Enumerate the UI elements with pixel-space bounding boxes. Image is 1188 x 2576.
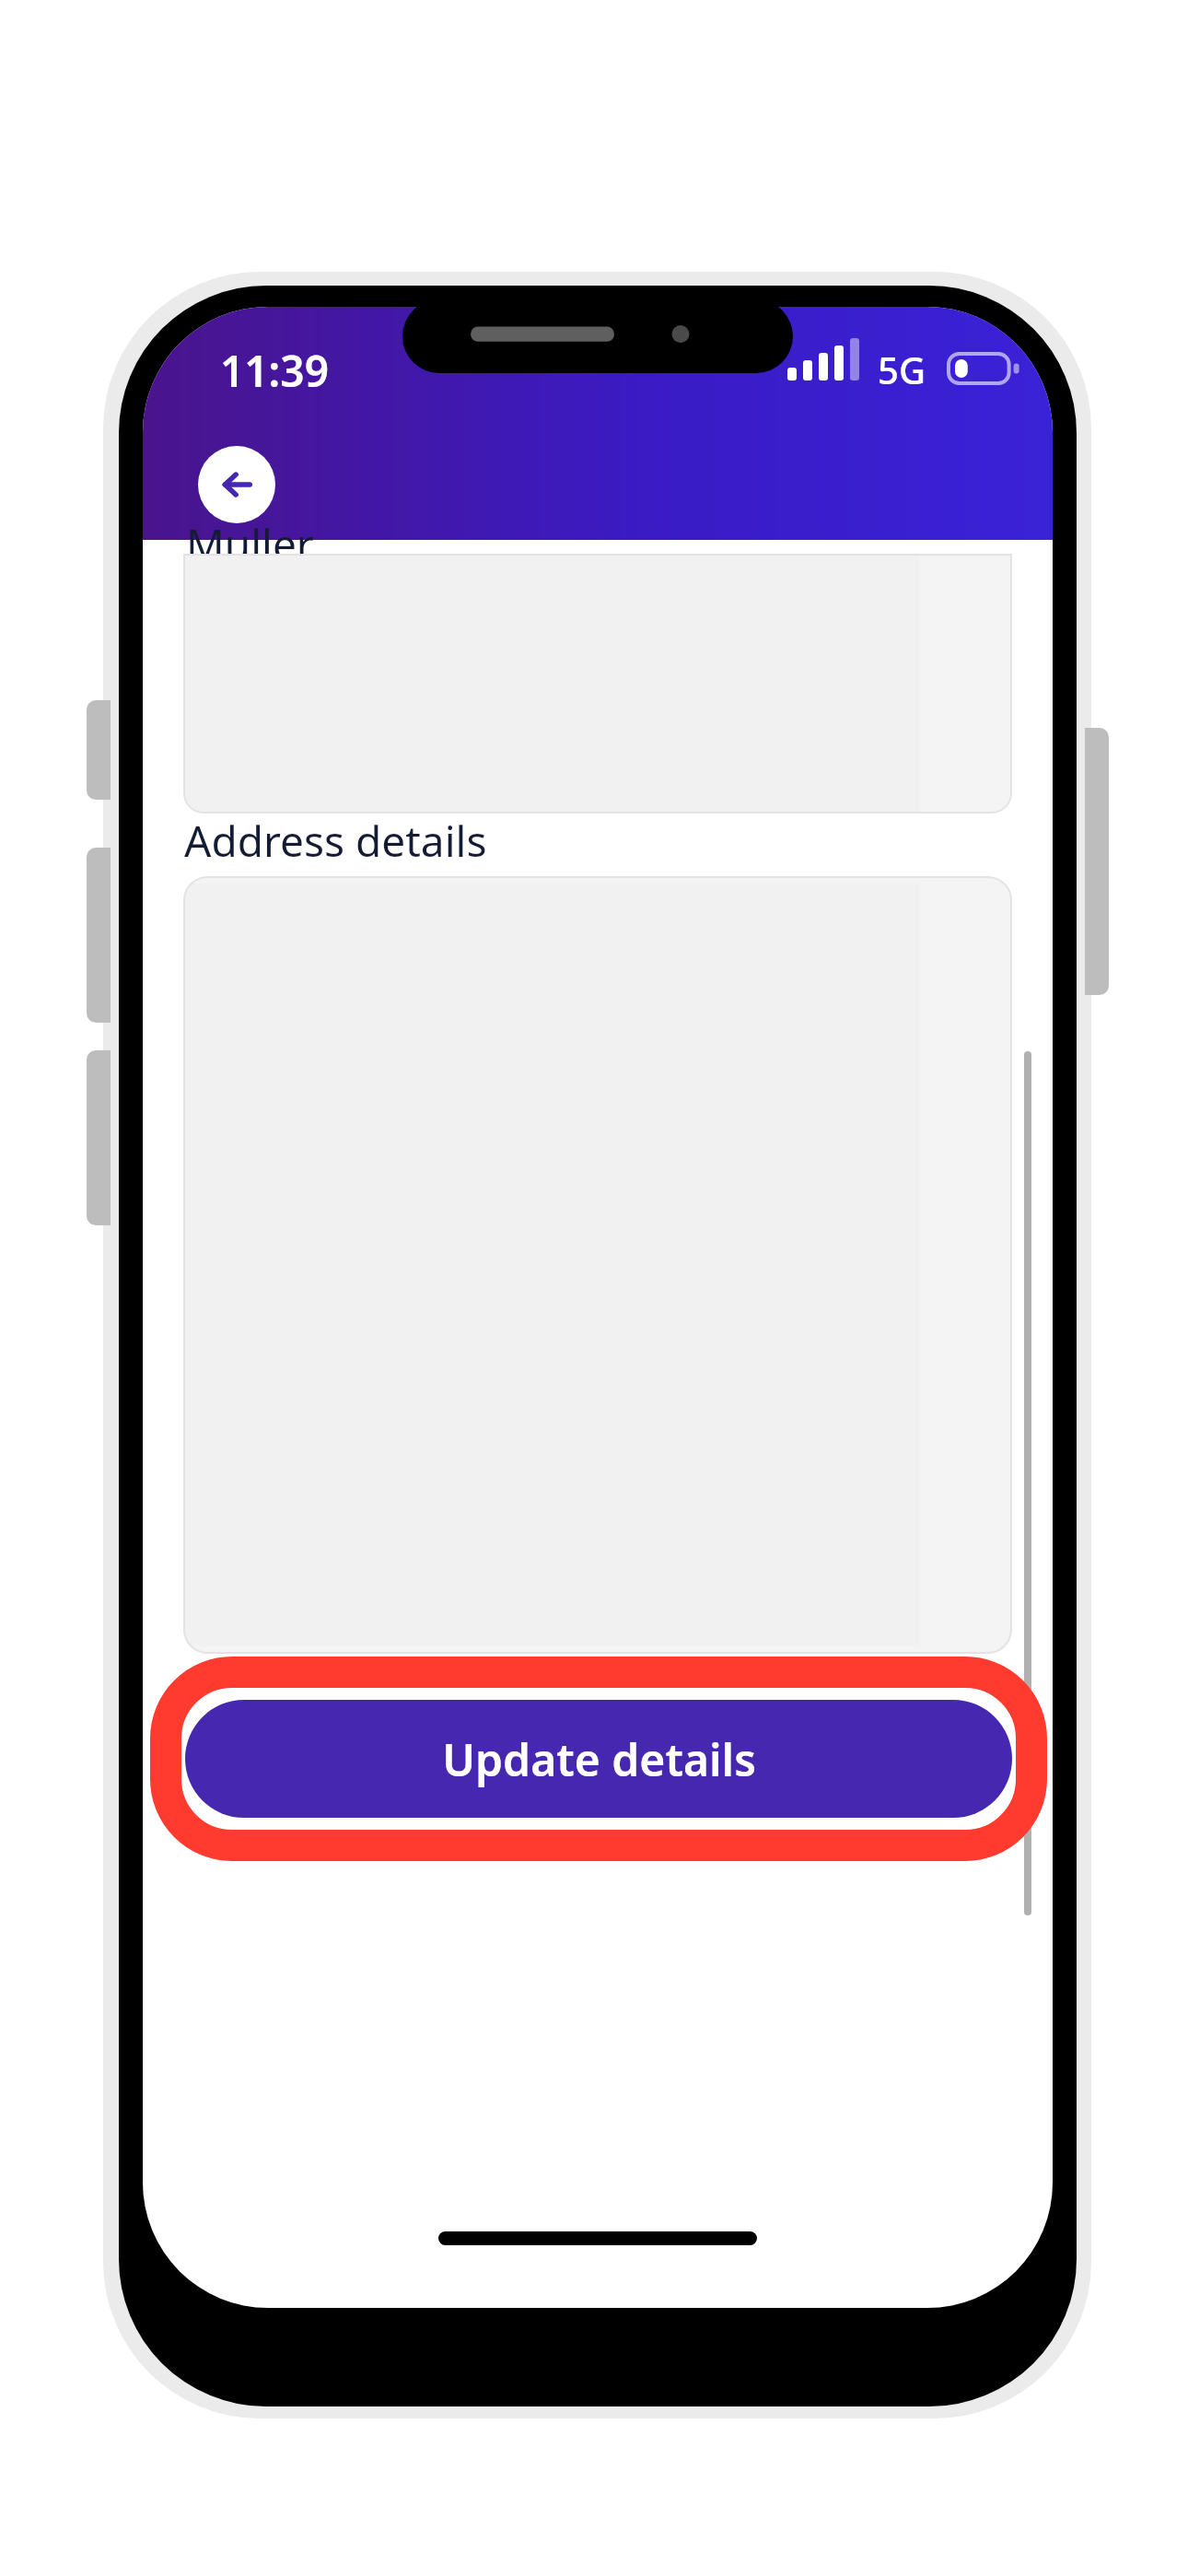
button[interactable]: Back <box>198 446 275 523</box>
staticText: Muller <box>186 515 314 573</box>
staticText: 11:39 <box>220 342 329 400</box>
staticText: Address details <box>184 812 487 870</box>
staticText: 5G <box>878 345 926 394</box>
button[interactable]: Update details <box>185 1700 1012 1818</box>
staticText: Update details <box>442 1729 756 1789</box>
